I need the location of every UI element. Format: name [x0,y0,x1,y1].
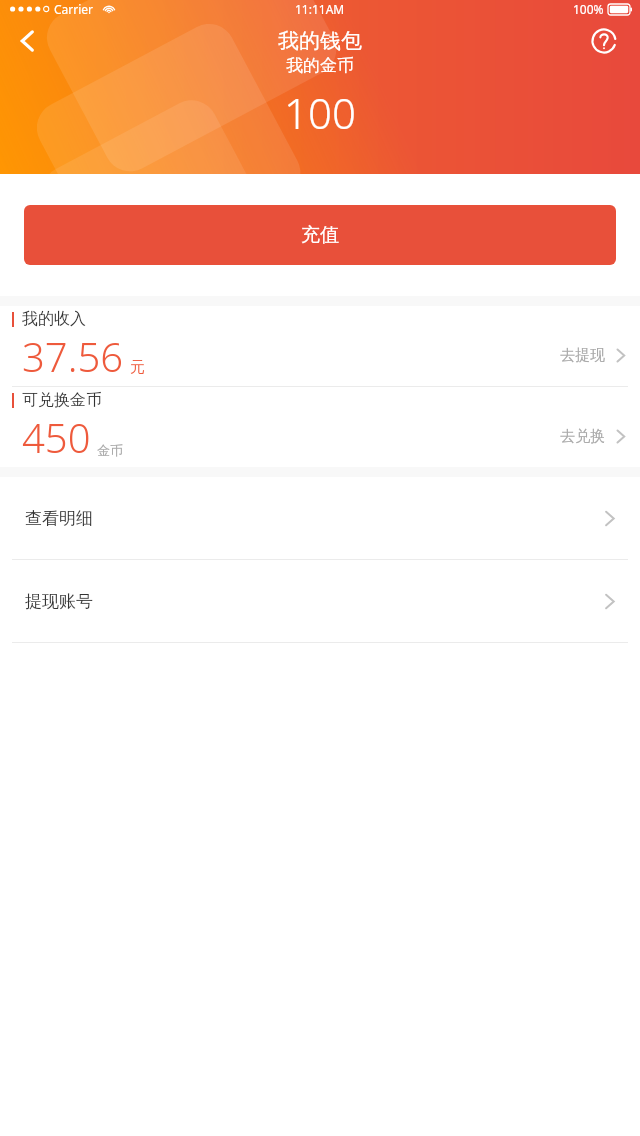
button[interactable]: 可兑换金币 [0,387,640,467]
staticText: 金币 [97,442,123,458]
button[interactable]: 我的收入 [0,306,640,386]
staticText: 100% [573,1,604,17]
staticText: 100 [284,84,356,141]
staticText: 我的金币 [286,55,354,76]
staticText: 去兑换 [560,427,605,446]
staticText: 元 [130,358,145,377]
button[interactable]: Back [0,13,56,69]
button[interactable]: 提现账号 [0,560,640,642]
staticText: 我的收入 [22,309,86,329]
staticText: 37.56 [22,329,124,383]
staticText: 450 [22,410,91,464]
button[interactable]: 充值 [24,205,616,265]
staticText: 我的钱包 [278,28,362,54]
staticText: 提现账号 [25,591,93,612]
staticText: 11:11AM [295,1,345,17]
button[interactable]: 查看明细 [0,477,640,559]
staticText: 去提现 [560,346,605,365]
staticText: Carrier [54,1,94,17]
button[interactable]: Help [580,17,628,65]
staticText: 查看明细 [25,508,93,529]
staticText: 可兑换金币 [22,390,102,410]
staticText: 充值 [301,223,339,247]
